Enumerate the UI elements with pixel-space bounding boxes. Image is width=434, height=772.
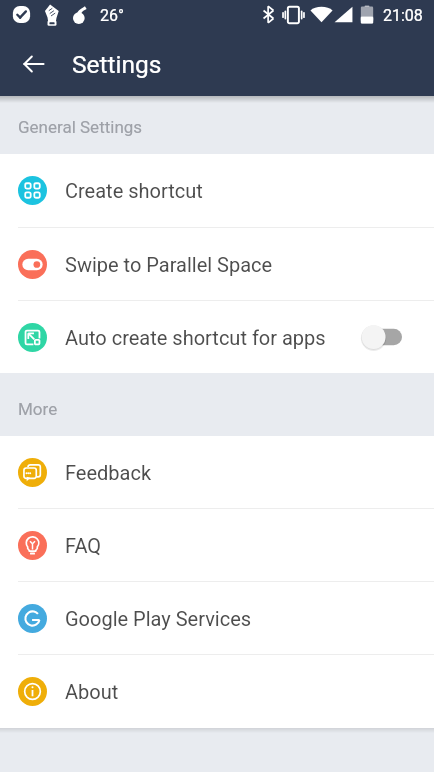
- button[interactable]: Auto create shortcut toggle: [360, 322, 402, 352]
- button[interactable]: Swipe to Parallel Space: [0, 228, 434, 300]
- staticText: More: [18, 399, 58, 419]
- button[interactable]: About: [0, 655, 434, 728]
- button[interactable]: FAQ: [0, 509, 434, 581]
- button[interactable]: Google Play Services: [0, 582, 434, 654]
- staticText: Auto create shortcut for apps: [65, 326, 326, 349]
- button[interactable]: Create shortcut: [0, 154, 434, 227]
- staticText: Feedback: [65, 461, 152, 484]
- button[interactable]: Back: [0, 32, 68, 96]
- staticText: 21:08: [383, 6, 423, 25]
- staticText: Google Play Services: [65, 607, 252, 630]
- staticText: Settings: [72, 50, 162, 79]
- button[interactable]: Feedback: [0, 436, 434, 508]
- button[interactable]: Auto create shortcut for apps: [0, 301, 434, 373]
- staticText: Swipe to Parallel Space: [65, 253, 273, 276]
- staticText: 26°: [100, 6, 124, 25]
- staticText: General Settings: [18, 117, 143, 137]
- staticText: FAQ: [65, 534, 102, 557]
- staticText: About: [65, 680, 119, 703]
- staticText: Create shortcut: [65, 179, 203, 202]
